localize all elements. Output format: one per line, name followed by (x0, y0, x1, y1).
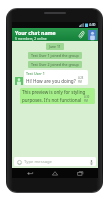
button[interactable]: Your chat name (15, 29, 76, 40)
staticText: 4:30 PM (84, 95, 93, 103)
staticText: Test User 1 joined the group (31, 53, 79, 58)
staticText: 4:30 (89, 23, 96, 27)
staticText: purposes. It's not functional (22, 97, 82, 103)
staticText: Type message (24, 159, 88, 165)
staticText: June 11 (49, 44, 61, 49)
staticText: Your chat name (15, 29, 56, 36)
button[interactable]: Test User 1 (24, 70, 88, 85)
staticText: Hi! How are you doing? (26, 78, 76, 84)
staticText: 4:28 PM (78, 76, 86, 84)
button[interactable]: Record voice message (88, 159, 94, 165)
button[interactable]: Emoji (14, 157, 96, 166)
button[interactable]: Back (23, 168, 37, 178)
button[interactable]: Chat participants (87, 29, 97, 40)
staticText: Test User 1 (26, 71, 45, 76)
button[interactable]: This preview is only for styling (20, 88, 95, 104)
staticText: This preview is only for styling (22, 89, 86, 95)
staticText: 5 members, 2 online (15, 36, 47, 40)
button[interactable]: Emoji (16, 159, 22, 165)
button[interactable]: Home (48, 168, 62, 178)
button[interactable]: Attach (76, 29, 87, 40)
button[interactable]: Recent apps (73, 168, 87, 178)
staticText: Test User 2 joined the group (31, 62, 79, 67)
